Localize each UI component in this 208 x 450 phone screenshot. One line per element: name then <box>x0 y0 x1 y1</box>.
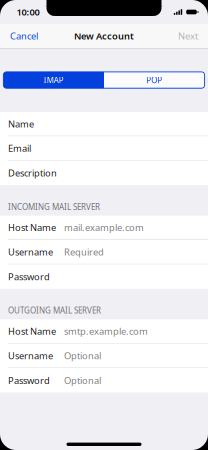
staticText: 10:00 <box>16 6 39 18</box>
button[interactable]: Host Name <box>0 319 208 344</box>
staticText: Host Name <box>8 221 56 234</box>
staticText: IMAP <box>44 75 64 85</box>
staticText: Host Name <box>8 325 56 337</box>
staticText: Optional <box>64 374 101 386</box>
staticText: OUTGOING MAIL SERVER <box>8 305 101 316</box>
button[interactable]: Password <box>0 368 208 392</box>
button[interactable]: Password <box>0 264 208 289</box>
staticText: mail.example.com <box>64 221 144 234</box>
button[interactable]: Email <box>0 136 208 161</box>
button[interactable]: Host Name <box>0 216 208 240</box>
staticText: INCOMING MAIL SERVER <box>8 201 100 212</box>
staticText: Username <box>8 246 53 258</box>
staticText: Cancel <box>10 30 38 42</box>
button[interactable]: Description <box>0 161 208 185</box>
staticText: Email <box>8 142 31 154</box>
button[interactable]: IMAP <box>3 72 104 88</box>
button[interactable]: Name <box>0 112 208 136</box>
staticText: Name <box>8 118 34 130</box>
staticText: Description <box>8 167 57 179</box>
button[interactable]: Next <box>168 24 208 48</box>
staticText: Optional <box>64 349 101 362</box>
staticText: Next <box>178 30 198 42</box>
button[interactable]: Cancel <box>0 24 48 48</box>
staticText: New Account <box>74 30 134 42</box>
button[interactable]: Username <box>0 344 208 368</box>
staticText: Password <box>8 374 50 386</box>
staticText: Required <box>64 246 104 258</box>
staticText: POP <box>146 75 162 85</box>
button[interactable]: Username <box>0 240 208 264</box>
staticText: smtp.example.com <box>64 325 148 337</box>
button[interactable]: POP <box>104 72 205 88</box>
staticText: Username <box>8 349 53 362</box>
staticText: Password <box>8 270 50 283</box>
